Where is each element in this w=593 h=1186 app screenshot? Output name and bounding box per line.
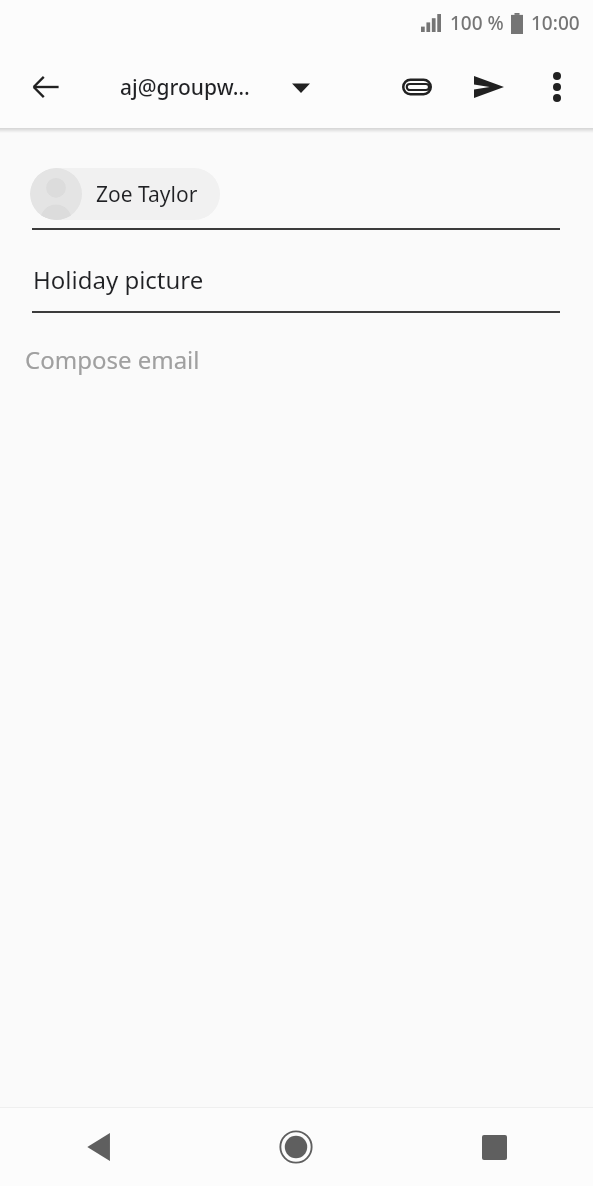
- button[interactable]: Recent apps: [395, 1108, 593, 1186]
- button[interactable]: Zoe Taylor: [30, 168, 220, 220]
- staticText: Zoe Taylor: [96, 180, 198, 209]
- staticText: Compose email: [25, 343, 200, 376]
- staticText: 100 %: [450, 10, 504, 36]
- button[interactable]: Attach file: [389, 59, 445, 115]
- staticText: Holiday picture: [33, 263, 204, 296]
- staticText: 10:00: [531, 10, 580, 36]
- button[interactable]: Send: [461, 59, 517, 115]
- staticText: aj@groupw…: [120, 73, 250, 102]
- button[interactable]: Compose email: [0, 339, 593, 376]
- button[interactable]: Home: [197, 1108, 395, 1186]
- button[interactable]: Back: [20, 61, 72, 113]
- button[interactable]: More options: [529, 59, 585, 115]
- button[interactable]: Back: [0, 1108, 197, 1186]
- button[interactable]: aj@groupw…: [120, 73, 310, 102]
